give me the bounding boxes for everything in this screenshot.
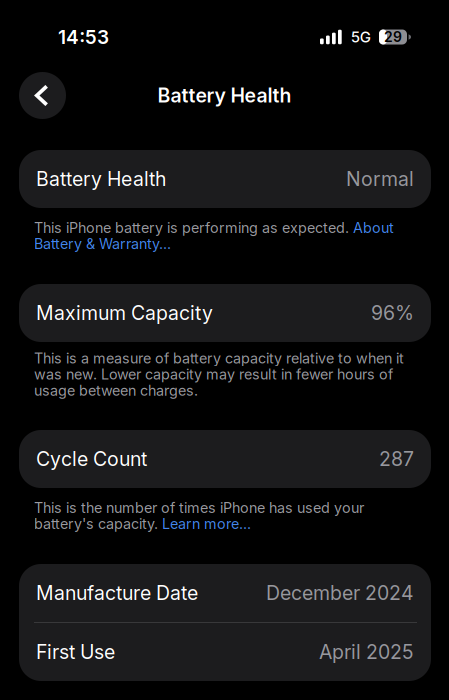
staticText: Battery Health <box>36 167 166 191</box>
button[interactable]: Cycle Count <box>19 430 431 488</box>
button[interactable]: Maximum Capacity <box>19 284 431 342</box>
staticText: April 2025 <box>319 640 414 664</box>
staticText: This iPhone battery is performing as exp… <box>34 219 394 252</box>
staticText: Maximum Capacity <box>36 301 213 325</box>
staticText: 29 <box>384 28 402 45</box>
button[interactable]: Manufacture Date <box>19 564 431 622</box>
staticText: Normal <box>346 167 414 191</box>
staticText: 5G <box>351 28 371 46</box>
staticText: Manufacture Date <box>36 581 198 605</box>
staticText: First Use <box>36 640 115 664</box>
staticText: This is a measure of battery capacity re… <box>34 349 404 399</box>
staticText: December 2024 <box>266 581 414 605</box>
staticText: 96% <box>371 301 414 325</box>
staticText: 14:53 <box>58 25 109 49</box>
staticText: Cycle Count <box>36 447 147 471</box>
staticText: 287 <box>379 447 414 471</box>
button[interactable]: First Use <box>19 623 431 681</box>
staticText: Battery Health <box>157 84 291 107</box>
staticText: This is the number of times iPhone has u… <box>34 499 364 532</box>
button[interactable]: Back <box>19 72 66 119</box>
button[interactable]: Battery Health <box>19 150 431 208</box>
